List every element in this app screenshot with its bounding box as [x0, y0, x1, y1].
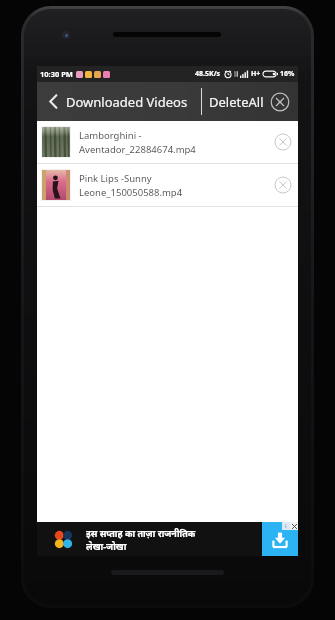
staticText: 10:30 PM	[40, 69, 73, 79]
staticText: i	[285, 523, 287, 530]
staticText: 48.5K/s	[195, 69, 221, 79]
button[interactable]: Install	[262, 522, 298, 556]
other: Close	[270, 92, 290, 112]
staticText: इस सप्ताह का ताज़ा राजनीतिक	[86, 527, 196, 539]
staticText: Downloaded Videos	[66, 93, 188, 111]
staticText: Lamborghini -	[79, 129, 142, 142]
button[interactable]: Delete	[274, 176, 292, 194]
staticText: लेखा-जोखा	[86, 540, 127, 552]
button[interactable]: Pink Lips -Sunny	[37, 164, 298, 206]
button[interactable]: Lamborghini -	[37, 121, 298, 163]
staticText: Aventador_22884674.mp4	[79, 143, 196, 156]
staticText: 16%	[280, 69, 295, 79]
button[interactable]: DeleteAll	[202, 82, 298, 121]
staticText: Pink Lips -Sunny	[79, 172, 152, 185]
staticText: DeleteAll	[209, 93, 264, 111]
staticText: Leone_150050588.mp4	[79, 186, 183, 199]
button[interactable]: Downloaded Videos	[37, 82, 201, 121]
button[interactable]: इस सप्ताह का ताज़ा राजनीतिक	[37, 522, 298, 556]
staticText: H+	[251, 69, 261, 79]
button[interactable]: Delete	[274, 133, 292, 151]
